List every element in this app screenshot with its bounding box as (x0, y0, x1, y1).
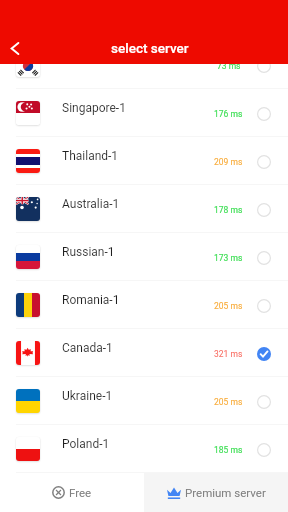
staticText: Ukraine-1 (62, 389, 113, 403)
button[interactable]: Ukraine-1 (0, 377, 288, 425)
staticText: Premium server (185, 486, 266, 499)
staticText: Thailand-1 (62, 149, 119, 163)
staticText: Free (69, 486, 92, 499)
button[interactable]: Russian-1 (0, 233, 288, 281)
button[interactable]: Back (0, 33, 30, 63)
staticText: Russian-1 (62, 245, 115, 259)
staticText: South Korea-1 (62, 53, 138, 67)
staticText: 185 ms (214, 445, 243, 455)
staticText: 205 ms (214, 397, 243, 407)
button[interactable]: Premium server (144, 473, 288, 512)
staticText: Canada-1 (62, 341, 113, 355)
staticText: 73 ms (217, 61, 241, 71)
button[interactable]: Singapore-1 (0, 89, 288, 137)
staticText: Romania-1 (62, 293, 120, 307)
staticText: Poland-1 (62, 437, 110, 451)
button[interactable]: South Korea-1 (0, 41, 288, 89)
button[interactable]: Canada-1 (0, 329, 288, 377)
button[interactable]: Free (0, 473, 144, 512)
button[interactable]: Poland-1 (0, 425, 288, 473)
staticText: select server (111, 40, 189, 56)
button[interactable]: Romania-1 (0, 281, 288, 329)
staticText: Singapore-1 (62, 101, 126, 115)
staticText: 176 ms (214, 109, 243, 119)
staticText: Australia-1 (62, 197, 120, 211)
button[interactable]: Australia-1 (0, 185, 288, 233)
staticText: 173 ms (214, 253, 243, 263)
staticText: 321 ms (214, 349, 243, 359)
staticText: 178 ms (214, 205, 243, 215)
staticText: 209 ms (214, 157, 243, 167)
button[interactable]: Thailand-1 (0, 137, 288, 185)
staticText: 205 ms (214, 301, 243, 311)
